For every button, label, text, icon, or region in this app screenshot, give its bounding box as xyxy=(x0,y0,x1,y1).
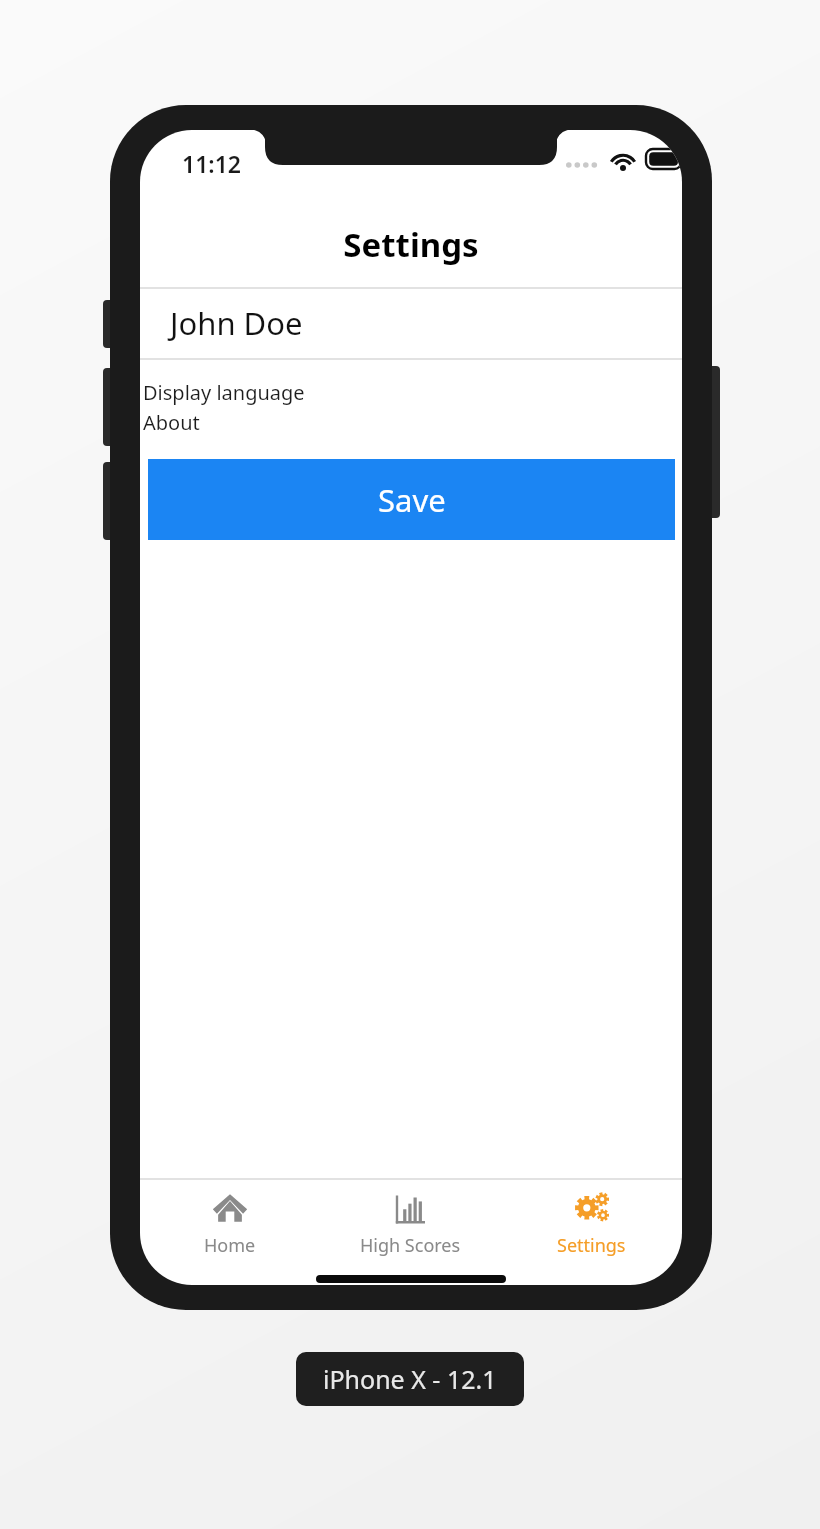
staticText: Display language xyxy=(143,379,305,406)
button[interactable]: Settings xyxy=(501,1180,682,1272)
button[interactable]: Save xyxy=(148,459,675,540)
staticText: Settings xyxy=(557,1233,626,1258)
staticText: Save xyxy=(378,479,446,521)
staticText: iPhone X - 12.1 xyxy=(323,1362,497,1396)
button[interactable]: Home xyxy=(140,1180,320,1272)
button[interactable]: About xyxy=(143,409,200,436)
staticText: About xyxy=(143,409,200,436)
button[interactable]: Display language xyxy=(143,379,305,406)
staticText: High Scores xyxy=(360,1233,461,1258)
staticText: Settings xyxy=(343,222,479,267)
staticText: John Doe xyxy=(170,302,303,344)
button[interactable]: High Scores xyxy=(320,1180,501,1272)
staticText: Home xyxy=(204,1233,256,1258)
button[interactable]: John Doe xyxy=(140,288,682,358)
staticText: 11:12 xyxy=(182,148,241,179)
